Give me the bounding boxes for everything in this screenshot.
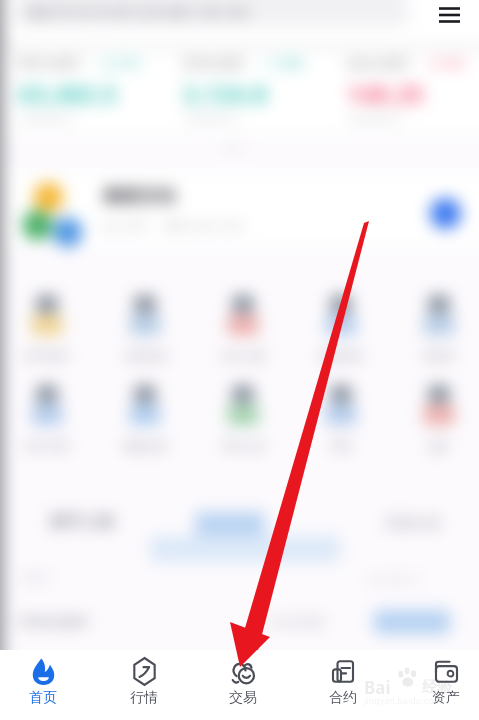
button[interactable]: SOL/USDT [347, 54, 479, 124]
staticText: 邀请返佣 [319, 349, 363, 363]
button[interactable]: BTC/USDT [19, 54, 189, 124]
staticText: 148.25 [347, 78, 425, 109]
staticText: 行情 [130, 689, 158, 707]
button[interactable]: 合约 [303, 658, 383, 716]
button[interactable]: 最新活动 [0, 172, 479, 246]
button[interactable]: 学院 [301, 385, 381, 453]
button[interactable]: ETH/USDT [183, 54, 353, 124]
staticText: 首页 [29, 689, 57, 707]
button[interactable]: 新手福利 [7, 295, 87, 363]
staticText: 63,482.5 [19, 78, 118, 109]
staticText: 3,124.8 [183, 78, 268, 109]
staticText: -0.74% [427, 55, 465, 71]
button[interactable] [430, 198, 461, 229]
button[interactable]: 资产 [406, 658, 479, 716]
staticText: 资产 [432, 689, 460, 707]
button[interactable]: ETH/USDT [0, 604, 479, 650]
staticText: 经验 [422, 678, 452, 697]
button[interactable]: 更多 [399, 385, 479, 453]
staticText: jingyan.baidu.com [364, 694, 442, 706]
button[interactable] [150, 536, 340, 562]
button[interactable]: 邀请返佣 [301, 295, 381, 363]
button[interactable]: 币种上新 [203, 385, 283, 453]
staticText: ETH/USDT [20, 612, 89, 631]
button[interactable]: 合约大赛 [203, 295, 283, 363]
button[interactable]: Menu [420, 0, 479, 32]
button[interactable]: 交易 [203, 658, 283, 716]
button[interactable]: 策略交易 [105, 385, 185, 453]
button[interactable]: 搜索 BTC/ETH/USDT 合约 现货 行情 排行 [14, 0, 410, 26]
button[interactable]: 资产证明 [7, 385, 87, 453]
staticText: 合约 [329, 689, 357, 707]
staticText: +1.08% [263, 55, 304, 71]
staticText: +2.31% [99, 55, 140, 71]
staticText: 最新活动 [103, 185, 175, 208]
button[interactable]: BTC [0, 560, 479, 600]
button[interactable]: 首页 [3, 658, 83, 716]
button[interactable]: 行情 [104, 658, 184, 716]
staticText: Bai [364, 676, 391, 699]
staticText: 新币上线 [50, 512, 114, 532]
button[interactable]: 新币上线 [0, 500, 479, 552]
staticText: 交易 [229, 689, 257, 707]
button[interactable]: 充值返现 [105, 295, 185, 363]
button[interactable]: 理财宝 [399, 295, 479, 363]
staticText: ≈$63,482.50 [19, 112, 73, 124]
